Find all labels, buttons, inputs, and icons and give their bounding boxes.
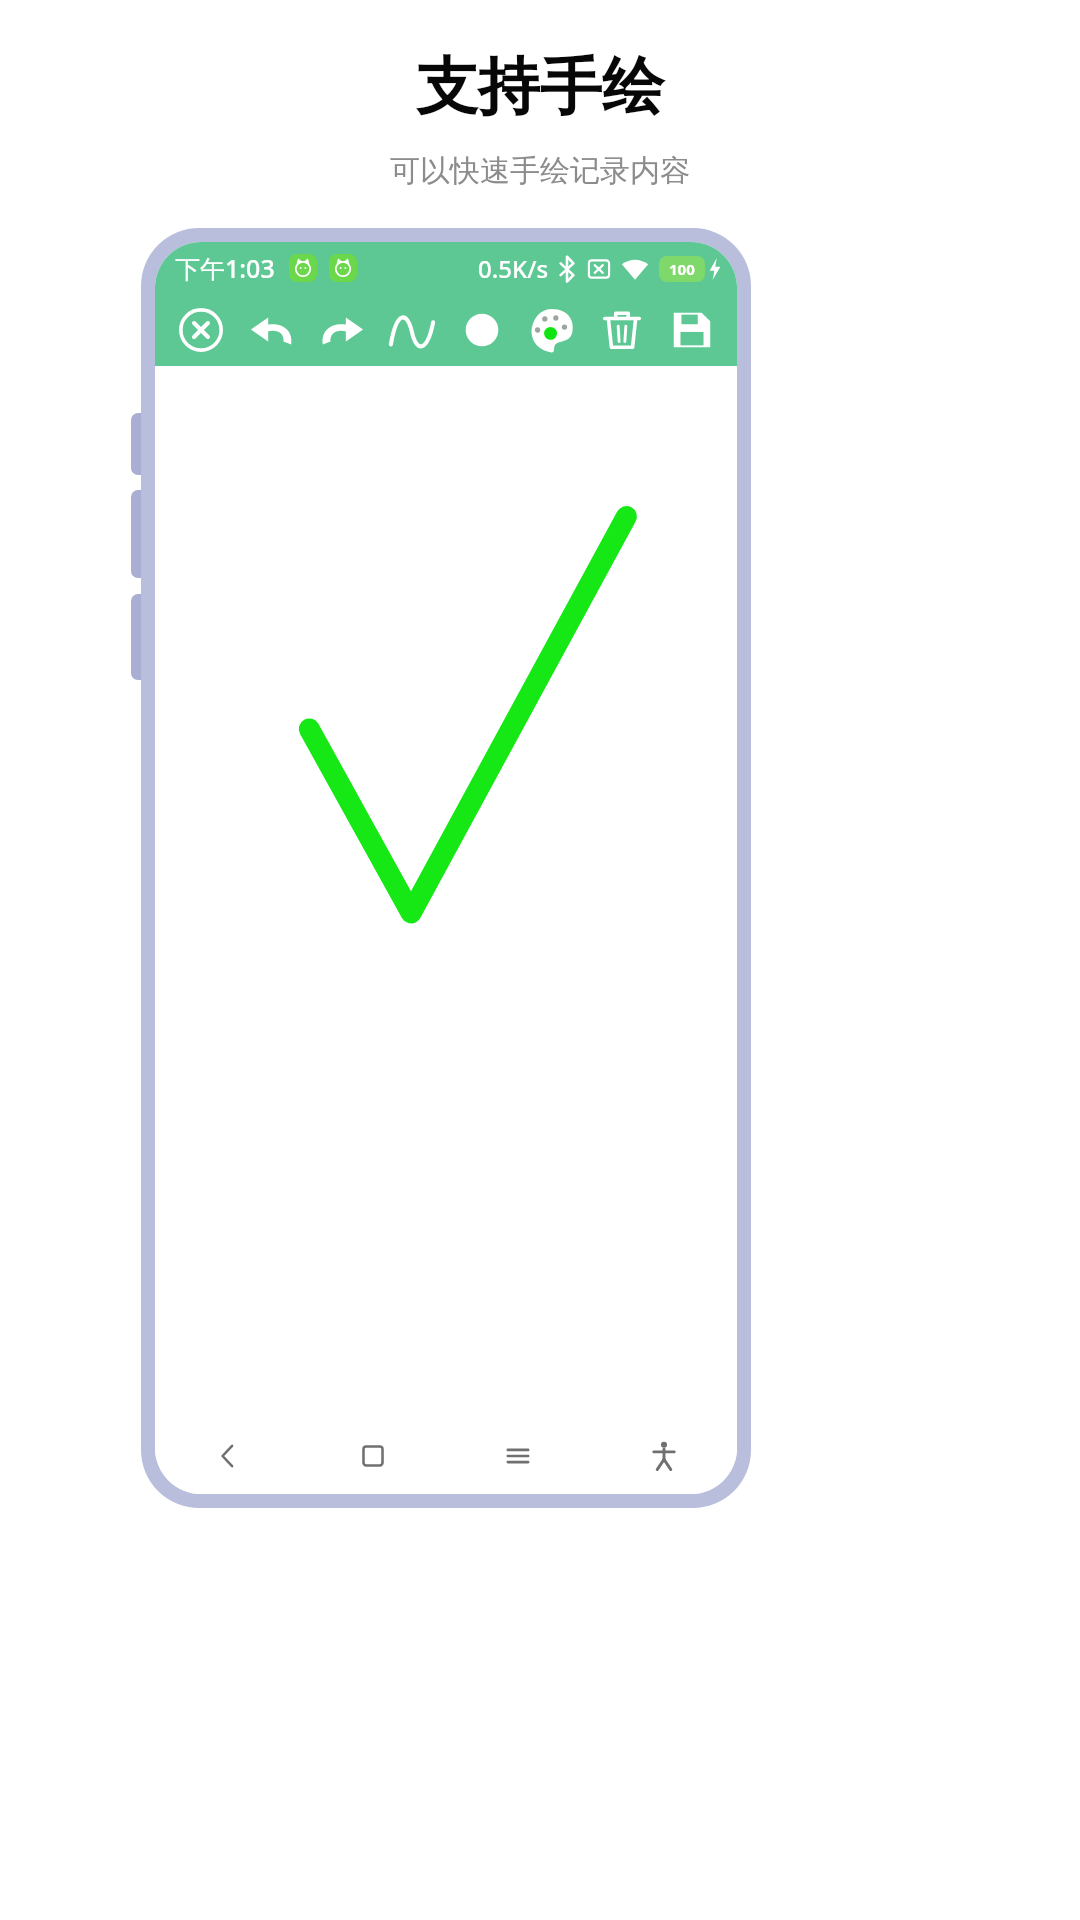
staticText: 可以快速手绘记录内容	[390, 152, 690, 190]
button[interactable]: Back	[155, 1418, 300, 1494]
button[interactable]: Recents	[445, 1418, 591, 1494]
button[interactable]: Home	[300, 1418, 445, 1494]
button[interactable]: Color palette	[517, 294, 587, 366]
button[interactable]: Undo	[236, 294, 307, 366]
button[interactable]: Save	[657, 294, 727, 366]
staticText: 100	[669, 259, 695, 279]
staticText: 支持手绘	[416, 48, 664, 126]
button[interactable]: Accessibility	[591, 1418, 737, 1494]
button[interactable]: Redo	[307, 294, 377, 366]
button[interactable]: Delete	[587, 294, 657, 366]
button[interactable]: Brush size	[447, 294, 517, 366]
staticText: 下午1:03	[175, 251, 275, 285]
button[interactable]: Brush style	[377, 294, 447, 366]
staticText: 0.5K/s	[478, 252, 549, 285]
button[interactable]: Close	[165, 294, 236, 366]
button[interactable]	[155, 366, 737, 1418]
